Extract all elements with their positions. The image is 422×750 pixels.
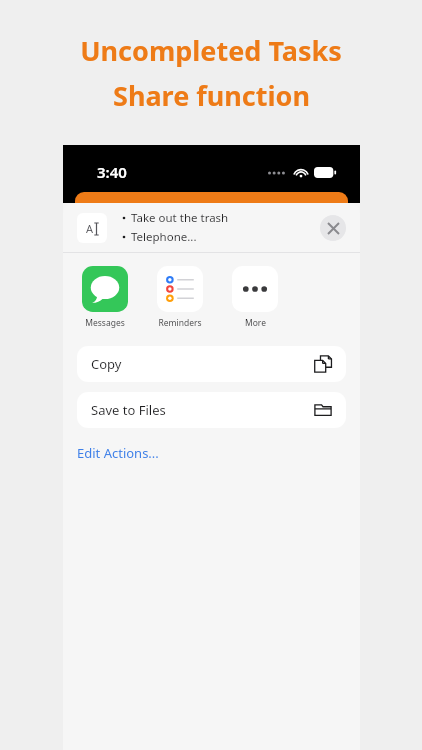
staticText: 3:40 [97, 162, 127, 182]
staticText: Edit Actions... [77, 444, 159, 462]
other: Save to Files [314, 401, 332, 419]
staticText: More [245, 317, 266, 329]
button[interactable]: Copy [77, 346, 346, 382]
staticText: Take out the trash [131, 210, 229, 226]
staticText: Copy [91, 355, 314, 373]
staticText: Telephone... [131, 229, 197, 245]
button[interactable]: A [63, 203, 360, 252]
button[interactable]: Save to Files [77, 392, 346, 428]
staticText: Save to Files [91, 401, 314, 419]
button[interactable]: Reminders [152, 266, 208, 329]
staticText: A [86, 221, 94, 236]
staticText: Share function [113, 77, 310, 114]
other: Copy [314, 355, 332, 373]
staticText: Uncompleted Tasks [80, 32, 342, 69]
button[interactable]: Close [320, 215, 346, 241]
staticText: Reminders [158, 317, 202, 329]
button[interactable]: More [227, 266, 283, 329]
button[interactable]: Messages [77, 266, 133, 329]
staticText: Messages [85, 317, 125, 329]
button[interactable]: Edit Actions... [77, 438, 159, 468]
